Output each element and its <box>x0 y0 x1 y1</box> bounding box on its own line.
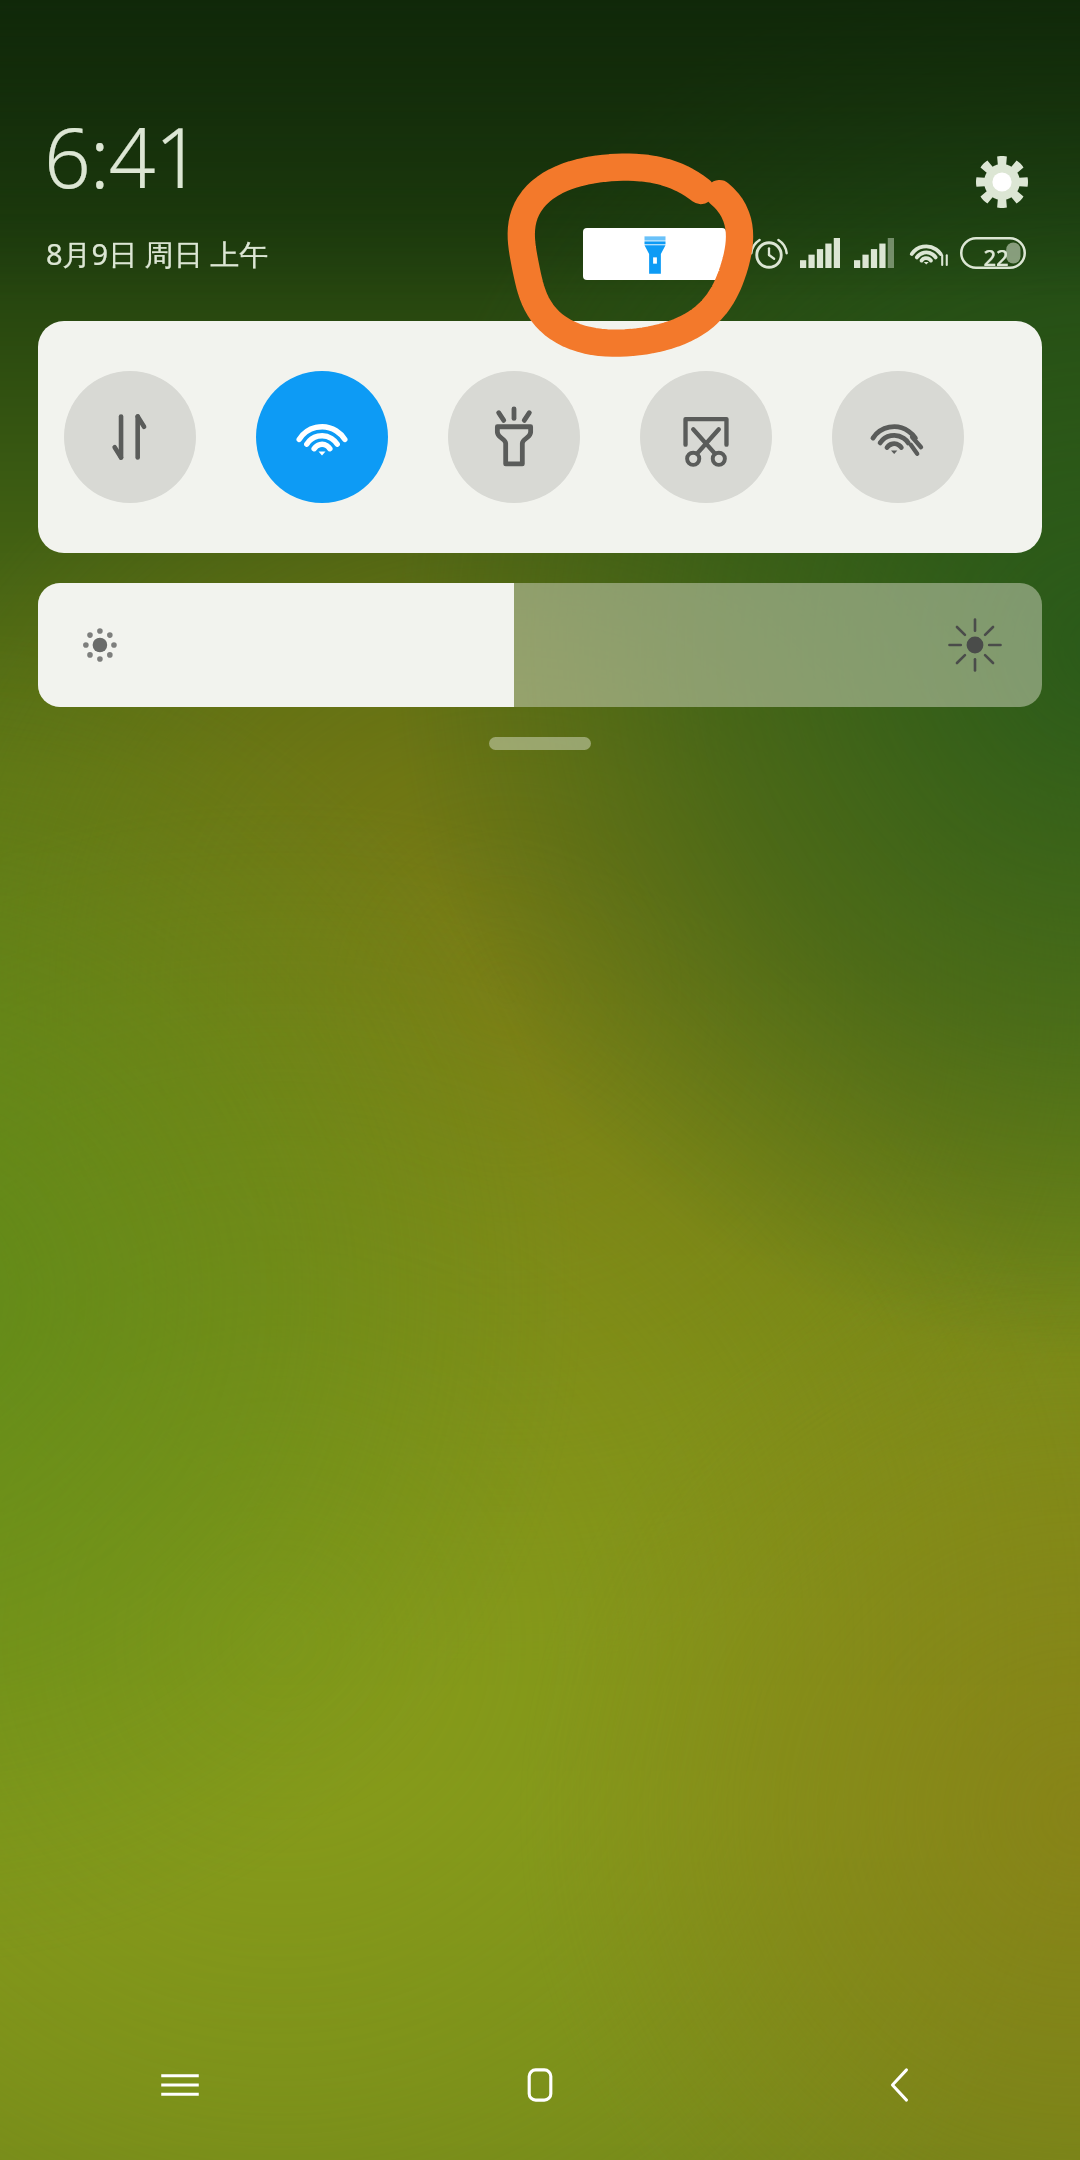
button[interactable]: Screenshot <box>640 371 772 503</box>
button[interactable]: Mobile data <box>64 371 196 503</box>
button[interactable]: Brightness <box>38 583 1042 707</box>
button[interactable]: Recents <box>0 2010 360 2160</box>
button[interactable]: Wi-Fi <box>256 371 388 503</box>
button[interactable]: Back <box>720 2010 1080 2160</box>
staticText: 22 <box>983 242 1009 272</box>
button[interactable]: Hotspot <box>832 371 964 503</box>
staticText: 6:41 <box>44 100 201 212</box>
button[interactable]: Settings <box>968 148 1036 216</box>
button[interactable]: Flashlight notification <box>583 228 726 280</box>
button[interactable]: Home <box>360 2010 720 2160</box>
staticText: 8月9日 周日 上午 <box>46 234 269 274</box>
button[interactable]: Flashlight <box>448 371 580 503</box>
